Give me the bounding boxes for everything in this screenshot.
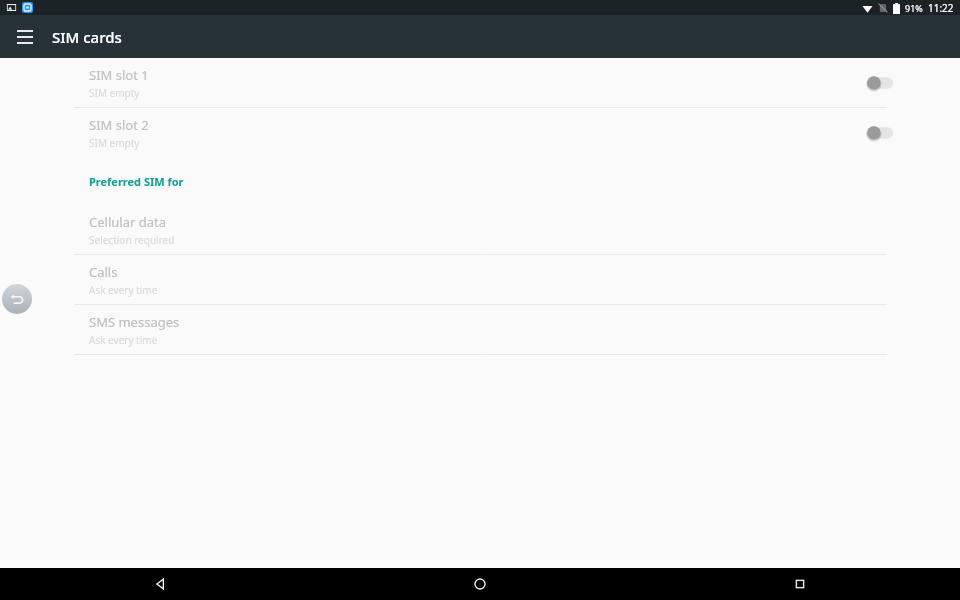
button[interactable]: Toggle SIM slot: [864, 72, 898, 94]
staticText: Calls: [89, 263, 118, 281]
button[interactable]: Back: [2, 284, 32, 314]
button[interactable]: Recent apps: [640, 568, 960, 600]
button[interactable]: Back: [0, 568, 320, 600]
button[interactable]: SIM slot 2: [0, 108, 960, 157]
button[interactable]: SMS messages: [0, 305, 960, 354]
button[interactable]: Open navigation menu: [9, 21, 41, 53]
staticText: SIM empty: [89, 136, 140, 150]
staticText: SMS messages: [89, 313, 180, 331]
staticText: Cellular data: [89, 213, 166, 231]
staticText: 91%: [905, 2, 923, 14]
button[interactable]: SIM slot 1: [0, 58, 960, 107]
button[interactable]: Home: [320, 568, 640, 600]
staticText: Ask every time: [89, 333, 158, 347]
button[interactable]: Cellular data: [0, 205, 960, 254]
staticText: SIM slot 1: [89, 66, 149, 84]
button[interactable]: Calls: [0, 255, 960, 304]
staticText: SIM slot 2: [89, 116, 149, 134]
staticText: 11:22: [928, 1, 954, 15]
button[interactable]: Toggle SIM slot: [864, 122, 898, 144]
staticText: Ask every time: [89, 283, 158, 297]
staticText: Selection required: [89, 233, 175, 247]
staticText: Preferred SIM for: [89, 174, 184, 189]
staticText: SIM cards: [52, 27, 122, 47]
staticText: SIM empty: [89, 86, 140, 100]
